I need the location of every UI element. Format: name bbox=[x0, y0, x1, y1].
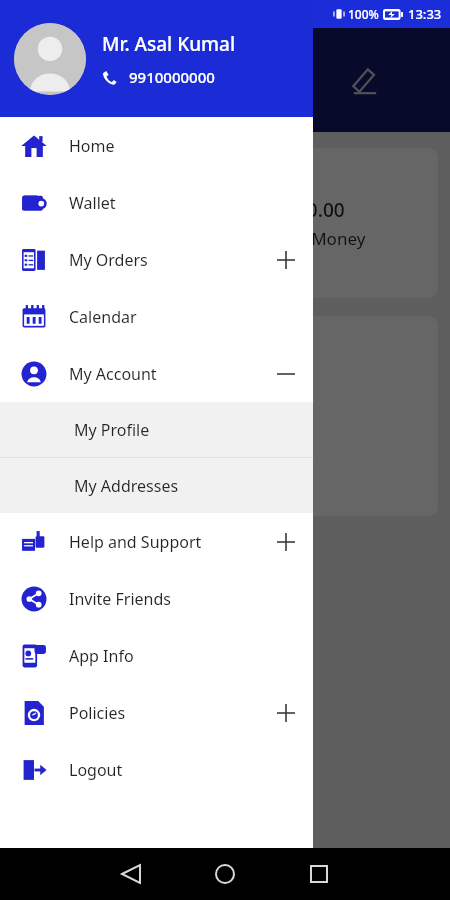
button[interactable]: Home bbox=[202, 851, 248, 897]
button[interactable]: My Orders bbox=[0, 231, 313, 288]
button[interactable] bbox=[12, 316, 438, 516]
staticText: 13:33 bbox=[408, 5, 442, 23]
staticText: Invite Friends bbox=[69, 588, 171, 610]
button[interactable]: My Addresses bbox=[0, 458, 313, 513]
button[interactable]: Edit bbox=[341, 56, 389, 104]
button[interactable]: Help and Support bbox=[0, 513, 313, 570]
button[interactable]: Profile photo bbox=[14, 23, 86, 95]
staticText: ₹0.00 bbox=[296, 197, 345, 223]
staticText: My Account bbox=[69, 363, 157, 385]
button[interactable]: Wallet bbox=[0, 174, 313, 231]
button[interactable]: My Profile bbox=[0, 402, 313, 457]
staticText: Policies bbox=[69, 702, 126, 724]
staticText: Logout bbox=[69, 759, 123, 781]
button[interactable]: Recent apps bbox=[296, 851, 342, 897]
staticText: Help and Support bbox=[69, 531, 202, 553]
button[interactable]: Back bbox=[108, 851, 154, 897]
staticText: 9910000000 bbox=[129, 67, 215, 87]
staticText: 100% bbox=[348, 6, 379, 22]
staticText: Add Money bbox=[275, 227, 366, 250]
button[interactable]: ₹0.00 bbox=[12, 148, 438, 298]
staticText: Calendar bbox=[69, 306, 137, 328]
button[interactable]: My Account bbox=[0, 345, 313, 402]
staticText: My Addresses bbox=[74, 475, 179, 497]
staticText: Mr. Asal Kumal bbox=[102, 31, 236, 57]
button[interactable]: Policies bbox=[0, 684, 313, 741]
staticText: App Info bbox=[69, 645, 134, 667]
button[interactable]: Home bbox=[0, 117, 313, 174]
button[interactable]: App Info bbox=[0, 627, 313, 684]
button[interactable]: Logout bbox=[0, 741, 313, 798]
staticText: Home bbox=[69, 135, 115, 157]
button[interactable]: Invite Friends bbox=[0, 570, 313, 627]
button[interactable]: Calendar bbox=[0, 288, 313, 345]
staticText: My Profile bbox=[74, 419, 150, 441]
staticText: My Orders bbox=[69, 249, 148, 271]
staticText: Wallet bbox=[69, 192, 116, 214]
